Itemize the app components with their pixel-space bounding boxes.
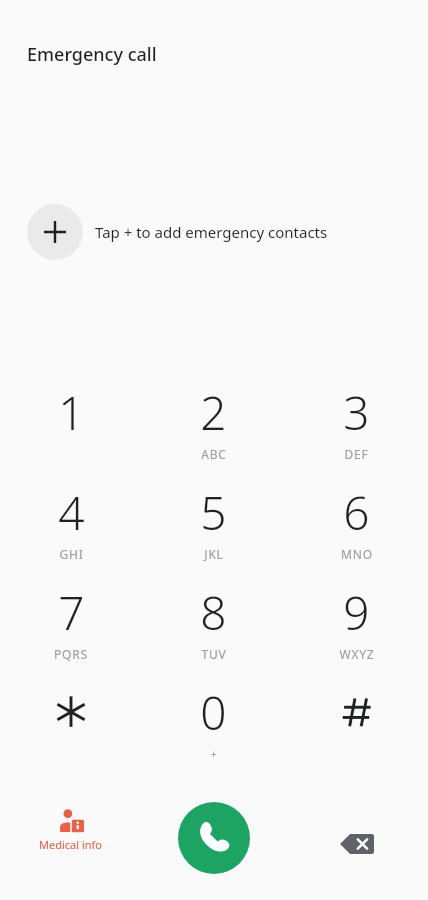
button[interactable]: 5: [142, 478, 285, 578]
button[interactable]: 0: [142, 678, 285, 778]
staticText: 0: [200, 681, 227, 744]
staticText: 7: [58, 581, 85, 644]
staticText: 6: [343, 481, 370, 544]
button[interactable]: 4: [0, 478, 142, 578]
staticText: 8: [200, 581, 227, 644]
staticText: 2: [200, 381, 227, 444]
button[interactable]: Medical info: [29, 806, 113, 854]
staticText: +: [210, 746, 218, 761]
staticText: MNO: [341, 546, 373, 562]
button[interactable]: [0, 678, 142, 778]
staticText: 4: [58, 481, 85, 544]
staticText: Tap + to add emergency contacts: [95, 222, 328, 242]
button[interactable]: 7: [0, 578, 142, 678]
button[interactable]: 3: [285, 378, 428, 478]
button[interactable]: 8: [142, 578, 285, 678]
button[interactable]: Call: [178, 802, 250, 874]
staticText: Medical info: [39, 837, 103, 852]
button[interactable]: 9: [285, 578, 428, 678]
staticText: ABC: [201, 446, 227, 462]
staticText: TUV: [201, 646, 227, 662]
staticText: PQRS: [54, 646, 88, 662]
button[interactable]: Backspace: [329, 816, 385, 872]
button[interactable]: 2: [142, 378, 285, 478]
button[interactable]: 6: [285, 478, 428, 578]
staticText: Emergency call: [27, 42, 157, 67]
button[interactable]: [285, 678, 428, 778]
staticText: JKL: [204, 546, 224, 562]
button[interactable]: 1: [0, 378, 142, 478]
staticText: DEF: [344, 446, 369, 462]
staticText: 9: [343, 581, 370, 644]
button[interactable]: Tap + to add emergency contacts: [0, 196, 428, 268]
staticText: 3: [343, 381, 370, 444]
staticText: 1: [58, 381, 85, 444]
staticText: WXYZ: [339, 646, 375, 662]
staticText: 5: [200, 481, 227, 544]
staticText: GHI: [59, 546, 84, 562]
